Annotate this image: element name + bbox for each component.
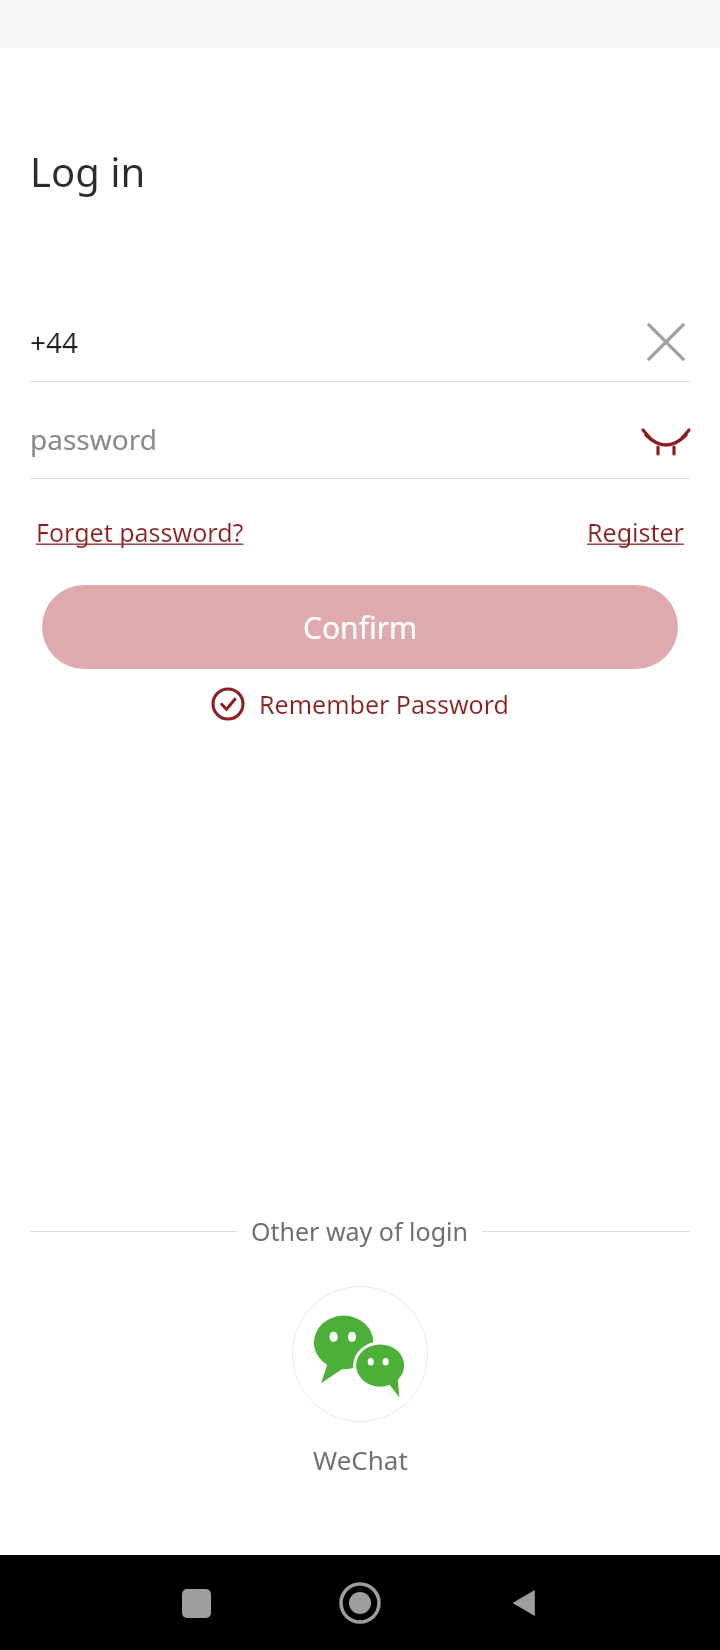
- button[interactable]: Forget password?: [36, 515, 244, 549]
- staticText: Remember Password: [259, 687, 509, 721]
- button[interactable]: Log in with WeChat: [292, 1286, 428, 1422]
- button[interactable]: Recent apps: [160, 1567, 232, 1639]
- button[interactable]: Show password: [642, 415, 690, 463]
- button[interactable]: Back: [488, 1567, 560, 1639]
- button[interactable]: +44: [30, 303, 690, 381]
- staticText: Register: [587, 515, 684, 549]
- button[interactable]: password: [30, 400, 690, 478]
- staticText: Other way of login: [251, 1214, 468, 1248]
- staticText: WeChat: [313, 1442, 408, 1477]
- button[interactable]: Clear: [642, 318, 690, 366]
- button[interactable]: Confirm: [42, 585, 678, 669]
- button[interactable]: Remember Password: [0, 687, 720, 721]
- staticText: +44: [30, 323, 79, 361]
- staticText: Forget password?: [36, 515, 244, 549]
- button[interactable]: Register: [587, 515, 684, 549]
- staticText: password: [30, 420, 157, 458]
- staticText: Log in: [30, 144, 146, 198]
- staticText: Confirm: [303, 607, 418, 648]
- button[interactable]: Home: [324, 1567, 396, 1639]
